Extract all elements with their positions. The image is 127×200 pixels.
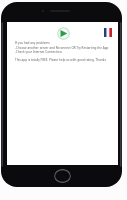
button[interactable]: Server country <box>104 28 112 37</box>
staticText: -Check your Internet Connection. <box>15 50 63 54</box>
button[interactable]: Home <box>54 169 71 183</box>
staticText: This app is totally FREE. Please help us… <box>15 58 106 62</box>
button[interactable]: Connect <box>57 27 70 40</box>
staticText: If you had any problems <box>15 41 50 45</box>
staticText: -Choose another server and Reconnect OR … <box>15 46 109 50</box>
